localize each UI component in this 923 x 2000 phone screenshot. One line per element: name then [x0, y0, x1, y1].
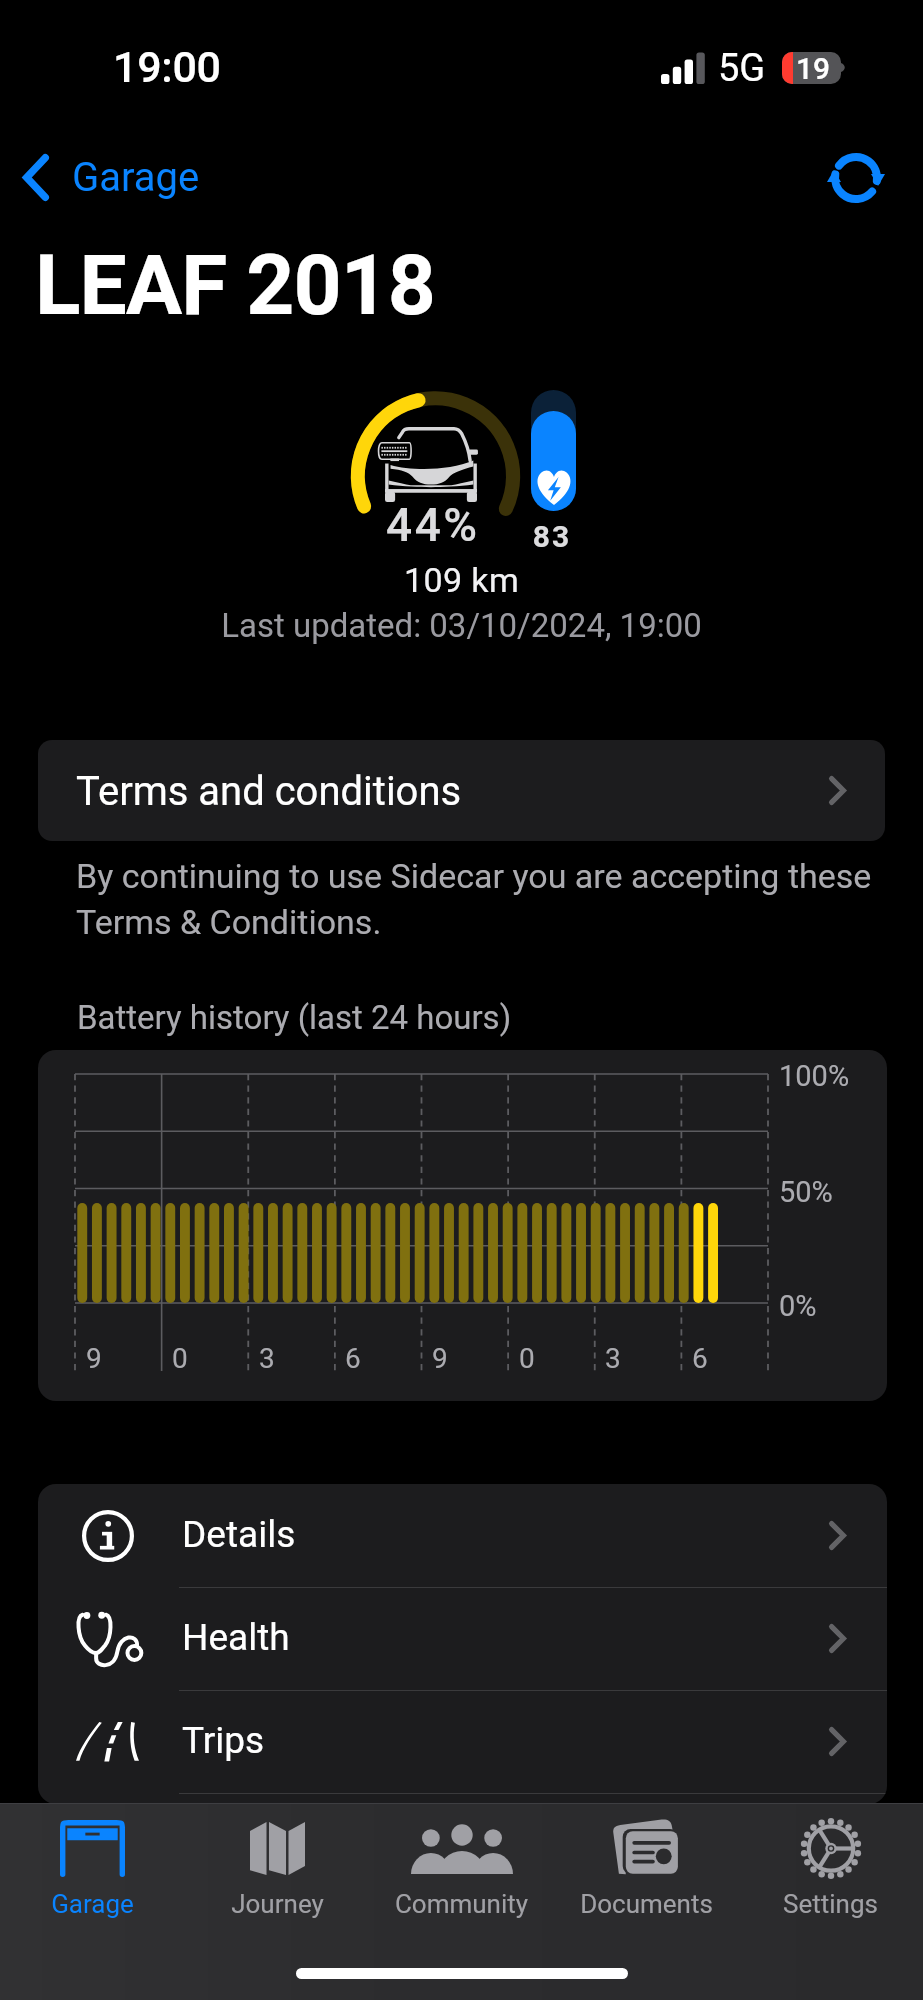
button[interactable]: Details [38, 1484, 887, 1587]
staticText: Health [182, 1616, 290, 1659]
staticText: 3 [259, 1342, 275, 1375]
staticText: 6 [692, 1342, 708, 1375]
staticText: 6 [345, 1342, 361, 1375]
staticText: Community [369, 1889, 554, 1919]
staticText: Documents [554, 1889, 739, 1919]
staticText: Settings [738, 1889, 923, 1919]
button[interactable]: Garage [0, 1803, 185, 1933]
staticText: 44% [386, 498, 480, 552]
staticText: 100% [779, 1059, 850, 1093]
button[interactable]: Trips [38, 1690, 887, 1793]
staticText: Trips [182, 1719, 265, 1762]
button[interactable]: Terms and conditions [38, 740, 885, 841]
button[interactable]: Journey [185, 1803, 370, 1933]
staticText: Battery history (last 24 hours) [77, 998, 512, 1037]
staticText: 9 [86, 1342, 102, 1375]
staticText: 5G [718, 46, 766, 91]
staticText: LEAF 2018 [35, 236, 436, 334]
staticText: Journey [185, 1889, 370, 1919]
button[interactable]: Community [369, 1803, 554, 1933]
staticText: 3 [605, 1342, 621, 1375]
staticText: 0% [779, 1289, 817, 1323]
staticText: 19:00 [113, 42, 221, 92]
button[interactable]: Refresh [818, 140, 894, 216]
button[interactable]: Garage [23, 148, 200, 206]
staticText: Terms and conditions [76, 768, 462, 815]
staticText: 19 [796, 52, 831, 83]
staticText: Garage [72, 154, 200, 201]
staticText: 0 [172, 1342, 188, 1375]
staticText: Last updated: 03/10/2024, 19:00 [0, 606, 923, 645]
button[interactable]: Documents [554, 1803, 739, 1933]
button[interactable]: Health [38, 1587, 887, 1690]
staticText: 109 km [0, 560, 923, 600]
staticText: Details [182, 1513, 296, 1556]
staticText: Garage [0, 1889, 185, 1919]
staticText: By continuing to use Sidecar you are acc… [76, 856, 876, 943]
staticText: 83 [495, 519, 609, 554]
staticText: 0 [519, 1342, 535, 1375]
staticText: 50% [779, 1175, 833, 1209]
button[interactable]: Settings [738, 1803, 923, 1933]
staticText: 9 [432, 1342, 448, 1375]
